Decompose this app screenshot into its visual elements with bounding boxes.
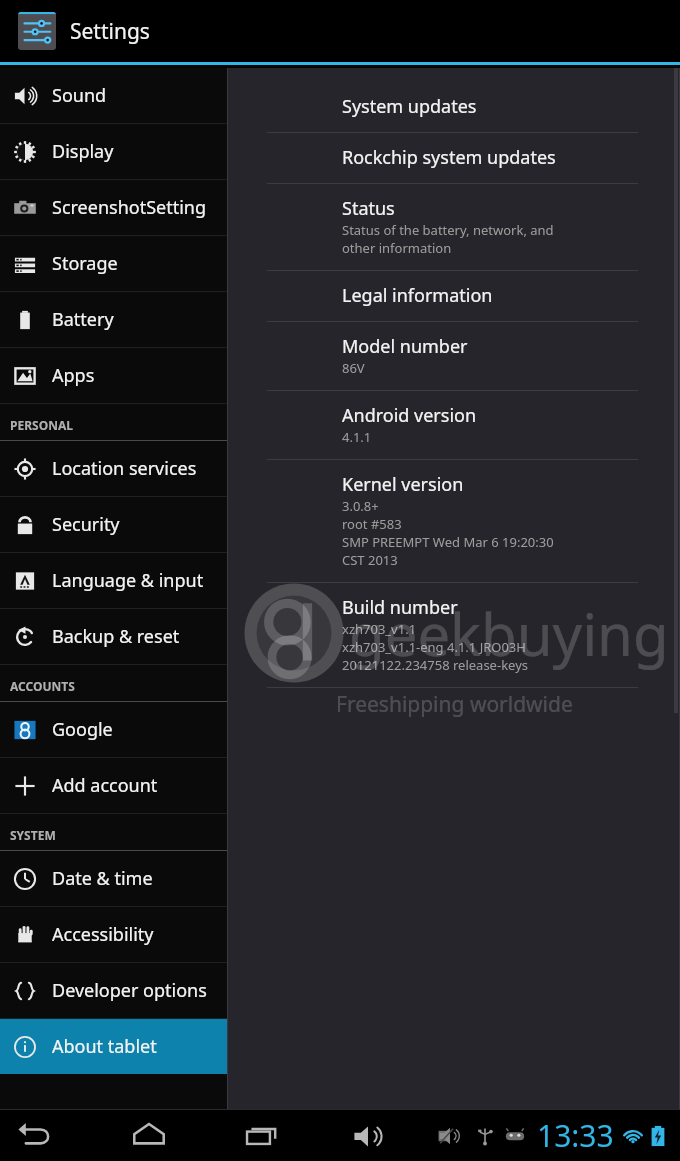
staticText: other information (342, 239, 452, 257)
staticText: Status (342, 196, 395, 221)
button[interactable]: Date & time (0, 851, 227, 906)
staticText: SYSTEM (10, 827, 56, 843)
button[interactable]: Location services (0, 441, 227, 496)
staticText: 4.1.1 (342, 428, 372, 446)
button[interactable]: Volume up (336, 1112, 400, 1160)
staticText: xzh703_v1.1-eng 4.1.1 JRO03H (342, 638, 526, 656)
button[interactable]: About tablet (0, 1019, 227, 1074)
button[interactable]: Recent apps (228, 1112, 296, 1160)
staticText: SMP PREEMPT Wed Mar 6 19:20:30 (342, 533, 554, 551)
button[interactable]: Storage (0, 236, 227, 291)
staticText: Location services (52, 456, 197, 481)
staticText: Kernel version (342, 472, 464, 497)
staticText: Settings (70, 17, 150, 46)
staticText: Apps (52, 363, 95, 388)
button[interactable]: Status (229, 184, 680, 270)
staticText: Display (52, 139, 114, 164)
staticText: geekbuying (349, 594, 669, 673)
button[interactable]: System updates (229, 68, 680, 132)
staticText: ACCOUNTS (10, 678, 75, 694)
button[interactable]: Back (0, 1112, 70, 1160)
button[interactable]: Legal information (229, 271, 680, 321)
button[interactable]: Apps (0, 348, 227, 403)
staticText: Date & time (52, 866, 153, 891)
staticText: Sound (52, 83, 107, 108)
staticText: 20121122.234758 release-keys (342, 656, 529, 674)
staticText: xzh703_v1.1 (342, 620, 417, 638)
button[interactable]: Language & input (0, 553, 227, 608)
button[interactable]: Google (0, 702, 227, 757)
button[interactable]: Build number (229, 583, 680, 687)
staticText: Storage (52, 251, 118, 276)
button[interactable]: Accessibility (0, 907, 227, 962)
staticText: ScreenshotSetting (52, 195, 207, 220)
button[interactable]: Display (0, 124, 227, 179)
button[interactable]: Kernel version (229, 460, 680, 582)
button[interactable]: Home (114, 1112, 184, 1160)
staticText: Developer options (52, 978, 207, 1003)
staticText: Backup & reset (52, 624, 180, 649)
button[interactable]: Add account (0, 758, 227, 813)
button[interactable]: Mute (433, 1119, 467, 1153)
button[interactable]: Settings icon (18, 12, 56, 50)
staticText: Build number (342, 595, 458, 620)
button[interactable]: Android version (229, 391, 680, 459)
staticText: Google (52, 717, 113, 742)
staticText: About tablet (52, 1034, 157, 1059)
staticText: 86V (342, 359, 365, 377)
staticText: PERSONAL (10, 417, 73, 433)
button[interactable]: Model number (229, 322, 680, 390)
staticText: Language & input (52, 568, 204, 593)
staticText: Freeshipping worldwide (336, 690, 573, 719)
staticText: Legal information (342, 283, 493, 308)
button[interactable]: Backup & reset (0, 609, 227, 664)
button[interactable]: Sound (0, 68, 227, 123)
button[interactable]: Developer options (0, 963, 227, 1018)
button[interactable]: ScreenshotSetting (0, 180, 227, 235)
staticText: Add account (52, 773, 158, 798)
staticText: Security (52, 512, 120, 537)
staticText: Model number (342, 334, 468, 359)
staticText: 3.0.8+ (342, 497, 379, 515)
staticText: 13:33 (537, 1115, 614, 1156)
staticText: Android version (342, 403, 477, 428)
staticText: Battery (52, 307, 114, 332)
button[interactable]: Battery (0, 292, 227, 347)
staticText: CST 2013 (342, 551, 398, 569)
button[interactable]: Rockchip system updates (229, 133, 680, 183)
staticText: System updates (342, 94, 477, 119)
staticText: Accessibility (52, 922, 154, 947)
staticText: root #583 (342, 515, 402, 533)
staticText: Rockchip system updates (342, 145, 556, 170)
staticText: Status of the battery, network, and (342, 221, 554, 239)
button[interactable]: Security (0, 497, 227, 552)
